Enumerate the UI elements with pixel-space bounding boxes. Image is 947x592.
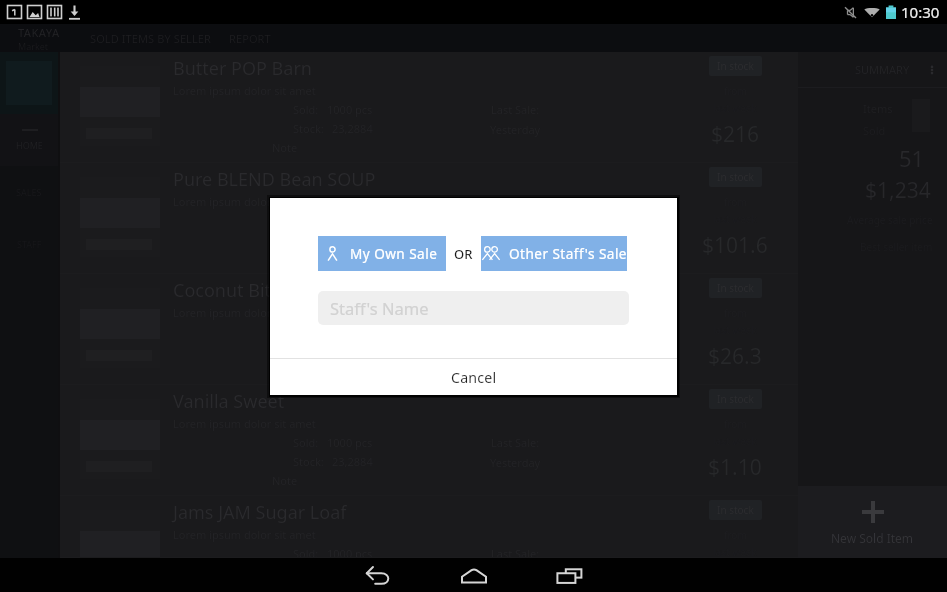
staticText: Lorem ipsum dolor sit amet	[173, 194, 316, 209]
staticText: 23,2884	[332, 232, 373, 247]
staticText: New Sold Item	[831, 530, 914, 546]
staticText: 51	[899, 143, 925, 173]
staticText: 1000 pcs	[327, 546, 373, 561]
staticText: $1,234	[865, 176, 931, 205]
staticText: Staff's Name	[330, 297, 429, 319]
staticText: In stock	[717, 392, 754, 406]
staticText: $26.3	[708, 342, 762, 371]
staticText: last week	[713, 545, 757, 559]
staticText: SUMMARY	[855, 62, 910, 77]
staticText: HOME	[16, 139, 43, 151]
button[interactable]: Vanilla Sweet	[60, 385, 798, 496]
staticText: Jams JAM Sugar Loaf	[173, 500, 347, 525]
staticText: Pure BLEND Bean SOUP	[173, 167, 376, 192]
button[interactable]: Other Staff's Sale	[481, 236, 627, 271]
button[interactable]: Home	[426, 558, 521, 592]
button[interactable]: My Own Sale	[318, 236, 446, 271]
staticText: SOLD ITEMS BY SELLER	[90, 31, 211, 46]
staticText: In stock	[717, 170, 754, 184]
staticText: Butter POP Barn	[173, 56, 312, 81]
staticText: Last Sale:	[491, 546, 540, 561]
staticText: Last Sale:	[491, 324, 540, 339]
staticText: $216	[711, 120, 760, 149]
staticText: Coconut Bite	[173, 278, 282, 303]
button[interactable]: New Sold Item	[798, 486, 947, 558]
staticText: 10:30	[901, 2, 940, 22]
staticText: In stock	[717, 281, 754, 295]
staticText: Yesterday	[490, 344, 541, 359]
staticText: $1.10	[708, 453, 762, 482]
staticText: Cancel	[451, 368, 497, 387]
button[interactable]: Cancel	[270, 359, 677, 395]
staticText: Lorem ipsum dolor sit amet	[173, 305, 316, 320]
button[interactable]: Staff's Name	[318, 291, 629, 325]
staticText: Vanilla Sweet	[173, 389, 285, 414]
button[interactable]: Back	[330, 558, 425, 592]
staticText: OR	[454, 245, 473, 263]
staticText: REPORT	[229, 31, 271, 46]
button[interactable]	[0, 52, 58, 114]
staticText: $101.6	[702, 231, 768, 260]
staticText: In stock	[717, 503, 754, 517]
button[interactable]: Recent apps	[522, 558, 617, 592]
staticText: Other Staff's Sale	[509, 244, 627, 263]
staticText: TAKAYA	[18, 25, 60, 40]
staticText: Sold:	[293, 546, 319, 561]
staticText: In stock	[717, 59, 754, 73]
staticText: My Own Sale	[350, 244, 438, 263]
button[interactable]: Pure BLEND Bean SOUP	[60, 163, 798, 274]
staticText: Stock:	[293, 232, 324, 247]
staticText: 1000 pcs	[327, 324, 373, 339]
button[interactable]: Coconut Bite	[60, 274, 798, 385]
staticText: Yesterday	[490, 233, 541, 248]
